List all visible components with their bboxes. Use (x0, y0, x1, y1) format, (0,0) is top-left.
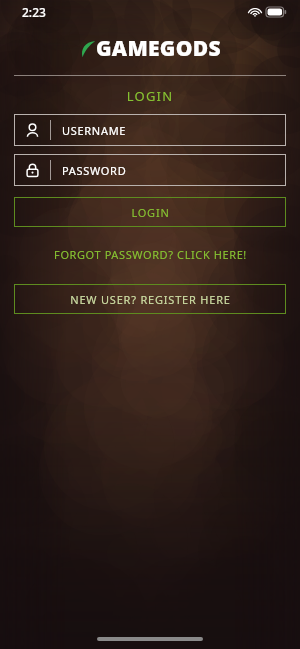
staticText: 2:23 (22, 4, 46, 20)
staticText: PASSWORD (62, 163, 127, 178)
staticText: LOGIN (0, 87, 300, 105)
staticText: NEW USER? REGISTER HERE (70, 292, 231, 307)
staticText: LOGIN (131, 205, 170, 220)
button[interactable]: NEW USER? REGISTER HERE (14, 284, 286, 314)
staticText: FORGOT PASSWORD? CLICK HERE! (54, 247, 247, 262)
button[interactable]: PASSWORD (14, 154, 286, 186)
button[interactable]: LOGIN (14, 197, 286, 227)
button[interactable]: FORGOT PASSWORD? CLICK HERE! (0, 242, 300, 267)
staticText: USERNAME (62, 123, 127, 138)
button[interactable]: USERNAME (14, 114, 286, 146)
staticText: GAMEGODS (96, 34, 221, 63)
